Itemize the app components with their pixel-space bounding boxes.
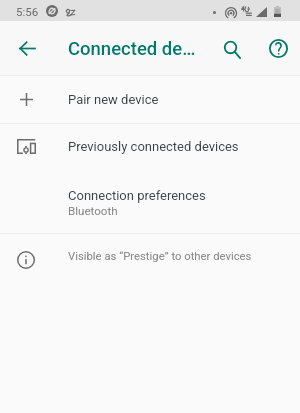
staticText: Connected de… (68, 38, 196, 60)
staticText: 5:56 (16, 5, 39, 18)
button[interactable]: Search (212, 30, 252, 70)
button[interactable]: Previously connected devices (0, 124, 300, 172)
staticText: Bluetooth (68, 204, 118, 218)
staticText: Connection preferences (68, 188, 206, 203)
button[interactable]: Help and feedback (258, 28, 298, 68)
button[interactable]: Visible as “Prestige” to other devices (0, 234, 300, 282)
button[interactable]: Navigate up (5, 26, 49, 70)
button[interactable]: Connection preferences (0, 172, 300, 233)
staticText: Pair new device (68, 92, 159, 107)
button[interactable]: Pair new device (0, 76, 300, 123)
staticText: Previously connected devices (68, 139, 239, 154)
staticText: Visible as “Prestige” to other devices (68, 250, 252, 263)
